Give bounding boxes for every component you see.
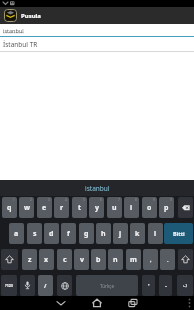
button[interactable]: x <box>39 249 54 270</box>
button[interactable]: , <box>143 249 158 270</box>
staticText: p <box>164 203 169 213</box>
staticText: i <box>130 203 133 213</box>
staticText: z <box>28 255 32 265</box>
staticText: 7 <box>118 198 120 202</box>
staticText: w <box>24 203 30 213</box>
staticText: g <box>84 229 89 239</box>
button[interactable]: q <box>2 197 17 218</box>
button[interactable] <box>1 249 18 270</box>
button[interactable]: v <box>74 249 89 270</box>
button[interactable]: ?123 <box>1 275 17 296</box>
button[interactable]: z <box>22 249 37 270</box>
button[interactable] <box>57 275 72 296</box>
button[interactable]: İstanbul TR <box>0 37 194 52</box>
staticText: istanbul <box>85 184 110 193</box>
button[interactable] <box>123 296 143 310</box>
button[interactable]: / <box>38 275 53 296</box>
staticText: r <box>60 203 64 213</box>
staticText: l <box>154 229 157 239</box>
button[interactable] <box>178 249 193 270</box>
staticText: :-) <box>183 283 187 288</box>
staticText: c <box>63 255 67 265</box>
button[interactable]: n <box>108 249 123 270</box>
button[interactable]: y <box>89 197 104 218</box>
button[interactable] <box>51 296 71 310</box>
button[interactable]: l <box>148 223 163 244</box>
staticText: 3 <box>48 198 50 202</box>
button[interactable]: m <box>126 249 141 270</box>
staticText: . <box>167 256 169 263</box>
button[interactable]: e <box>37 197 52 218</box>
staticText: 9 <box>153 198 155 202</box>
staticText: y <box>95 203 99 213</box>
staticText: h <box>101 229 106 239</box>
staticText: t <box>78 203 82 213</box>
staticText: q <box>7 203 12 213</box>
staticText: n <box>113 255 118 265</box>
staticText: - <box>165 282 167 290</box>
staticText: Pusula <box>21 12 41 20</box>
button[interactable]: - <box>159 275 172 296</box>
button[interactable] <box>87 296 107 310</box>
staticText: o <box>147 203 152 213</box>
button[interactable]: w <box>19 197 34 218</box>
button[interactable]: :-) <box>177 275 193 296</box>
button[interactable]: f <box>61 223 76 244</box>
button[interactable]: d <box>44 223 59 244</box>
button[interactable]: Türkçe <box>76 275 138 296</box>
button[interactable]: r <box>54 197 69 218</box>
staticText: x <box>44 255 49 265</box>
staticText: 2 <box>30 198 32 202</box>
button[interactable]: j <box>113 223 128 244</box>
staticText: 0 <box>170 198 172 202</box>
button[interactable]: . <box>160 249 175 270</box>
staticText: f <box>67 229 70 239</box>
button[interactable]: c <box>57 249 72 270</box>
button[interactable]: g <box>79 223 94 244</box>
button[interactable]: Pusula <box>0 7 194 24</box>
staticText: 8 <box>135 198 137 202</box>
staticText: istanbul <box>3 27 24 34</box>
staticText: 6 <box>100 198 102 202</box>
staticText: e <box>42 203 47 213</box>
staticText: s <box>33 229 37 239</box>
staticText: , <box>150 256 152 263</box>
staticText: Türkçe <box>100 283 115 289</box>
staticText: ?123 <box>5 283 13 288</box>
staticText: k <box>135 229 140 239</box>
button[interactable] <box>178 197 193 218</box>
staticText: b <box>96 255 101 265</box>
staticText: ' <box>148 282 150 290</box>
button[interactable]: i <box>124 197 139 218</box>
button[interactable]: ' <box>142 275 155 296</box>
button[interactable]: Bitti <box>164 223 193 244</box>
button[interactable] <box>20 275 35 296</box>
staticText: d <box>49 229 54 239</box>
staticText: / <box>44 282 47 290</box>
button[interactable]: u <box>107 197 122 218</box>
button[interactable]: o <box>142 197 157 218</box>
button[interactable]: s <box>27 223 42 244</box>
staticText: u <box>112 203 117 213</box>
button[interactable]: istanbul <box>0 24 194 37</box>
staticText: İstanbul TR <box>3 40 38 49</box>
staticText: j <box>119 229 122 239</box>
button[interactable]: p <box>159 197 174 218</box>
button[interactable]: h <box>96 223 111 244</box>
staticText: Bitti <box>173 230 185 237</box>
button[interactable]: a <box>9 223 24 244</box>
staticText: 5 <box>83 198 85 202</box>
staticText: 1 <box>13 198 15 202</box>
staticText: a <box>14 229 19 239</box>
staticText: v <box>80 255 84 265</box>
staticText: 4 <box>65 198 67 202</box>
button[interactable]: k <box>130 223 145 244</box>
staticText: m <box>130 255 137 265</box>
button[interactable]: t <box>72 197 87 218</box>
button[interactable]: b <box>91 249 106 270</box>
